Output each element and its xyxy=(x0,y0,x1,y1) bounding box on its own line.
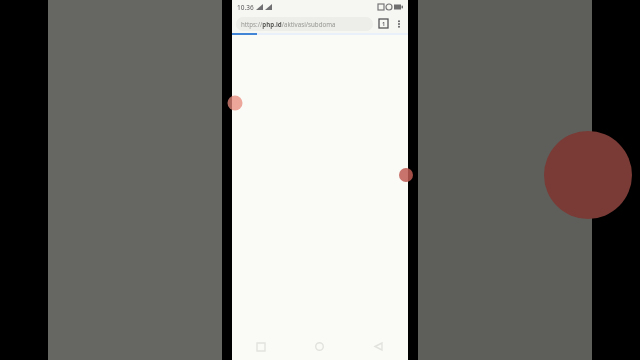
button[interactable]: Home xyxy=(290,333,349,360)
staticText: 10.36 xyxy=(237,3,254,12)
button[interactable]: Recent apps xyxy=(232,333,290,360)
button[interactable]: https://php.id/aktivasi/subdoma xyxy=(236,17,373,31)
staticText: 1 xyxy=(382,20,386,27)
button[interactable]: Tabs, 1 open xyxy=(377,17,390,30)
button[interactable]: More options xyxy=(392,17,405,30)
button[interactable]: Back xyxy=(349,333,408,360)
staticText: https://php.id/aktivasi/subdoma xyxy=(241,20,336,28)
